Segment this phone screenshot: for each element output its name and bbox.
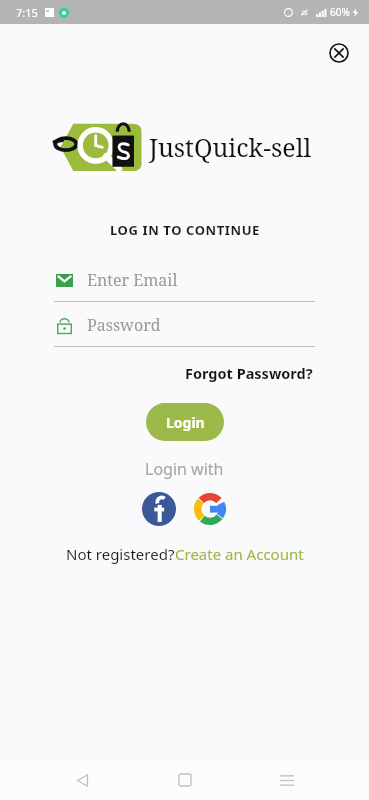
staticText: 7:15 xyxy=(16,5,38,20)
button[interactable]: Back xyxy=(62,760,102,800)
staticText: Forgot Password? xyxy=(185,363,313,383)
button[interactable]: Password xyxy=(54,304,315,347)
staticText: Login xyxy=(166,413,205,432)
staticText: Password xyxy=(87,314,161,336)
button[interactable]: Login with Facebook xyxy=(140,490,178,528)
button[interactable]: Close xyxy=(322,36,356,70)
button[interactable]: Login xyxy=(146,403,224,441)
staticText: Login with xyxy=(145,458,224,480)
staticText: Not registered? xyxy=(66,544,175,564)
button[interactable]: Forgot Password? xyxy=(183,361,315,385)
staticText: LOG IN TO CONTINUE xyxy=(110,221,260,239)
button[interactable]: Create an Account xyxy=(175,544,304,564)
button[interactable]: Recent apps xyxy=(267,760,307,800)
staticText: 60% xyxy=(330,5,350,19)
staticText: JustQuick-sell xyxy=(149,130,312,164)
button[interactable]: Enter Email xyxy=(54,259,315,302)
staticText: Enter Email xyxy=(87,269,178,291)
button[interactable]: Login with Google xyxy=(191,490,229,528)
button[interactable]: Home xyxy=(165,760,205,800)
staticText: Create an Account xyxy=(175,544,304,564)
